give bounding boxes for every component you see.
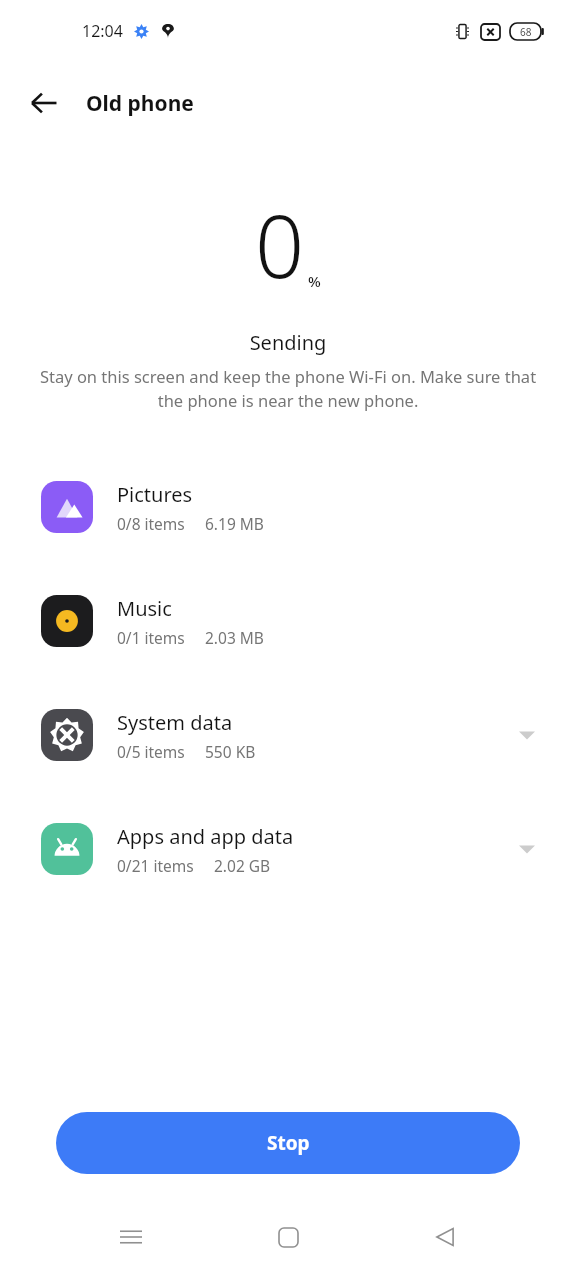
staticText: Apps and app data — [117, 823, 294, 850]
staticText: 12:04 — [82, 20, 123, 42]
staticText: Sending — [0, 329, 576, 356]
button[interactable]: Back — [419, 1212, 471, 1262]
button[interactable]: System data — [19, 683, 557, 787]
staticText: % — [308, 271, 321, 291]
staticText: 0/8 items — [117, 513, 185, 534]
button[interactable]: Pictures — [19, 455, 557, 559]
staticText: Old phone — [86, 89, 194, 118]
button[interactable]: Back — [20, 79, 68, 127]
staticText: 0/1 items — [117, 627, 185, 648]
staticText: 0/5 items — [117, 741, 185, 762]
button[interactable]: Apps and app data — [19, 797, 557, 901]
staticText: 2.02 GB — [214, 855, 271, 876]
staticText: Music — [117, 595, 172, 622]
staticText: 68 — [520, 25, 532, 39]
button[interactable]: Home — [262, 1212, 314, 1262]
staticText: 6.19 MB — [205, 513, 264, 534]
staticText: Stay on this screen and keep the phone W… — [28, 365, 548, 412]
staticText: 2.03 MB — [205, 627, 264, 648]
button[interactable]: Stop — [56, 1112, 520, 1174]
staticText: 0 — [255, 186, 305, 303]
button[interactable]: Recent apps — [105, 1212, 157, 1262]
staticText: Stop — [267, 1130, 310, 1156]
staticText: Pictures — [117, 481, 193, 508]
button[interactable]: Music — [19, 569, 557, 673]
staticText: 550 KB — [205, 741, 256, 762]
staticText: System data — [117, 709, 233, 736]
staticText: 0/21 items — [117, 855, 194, 876]
